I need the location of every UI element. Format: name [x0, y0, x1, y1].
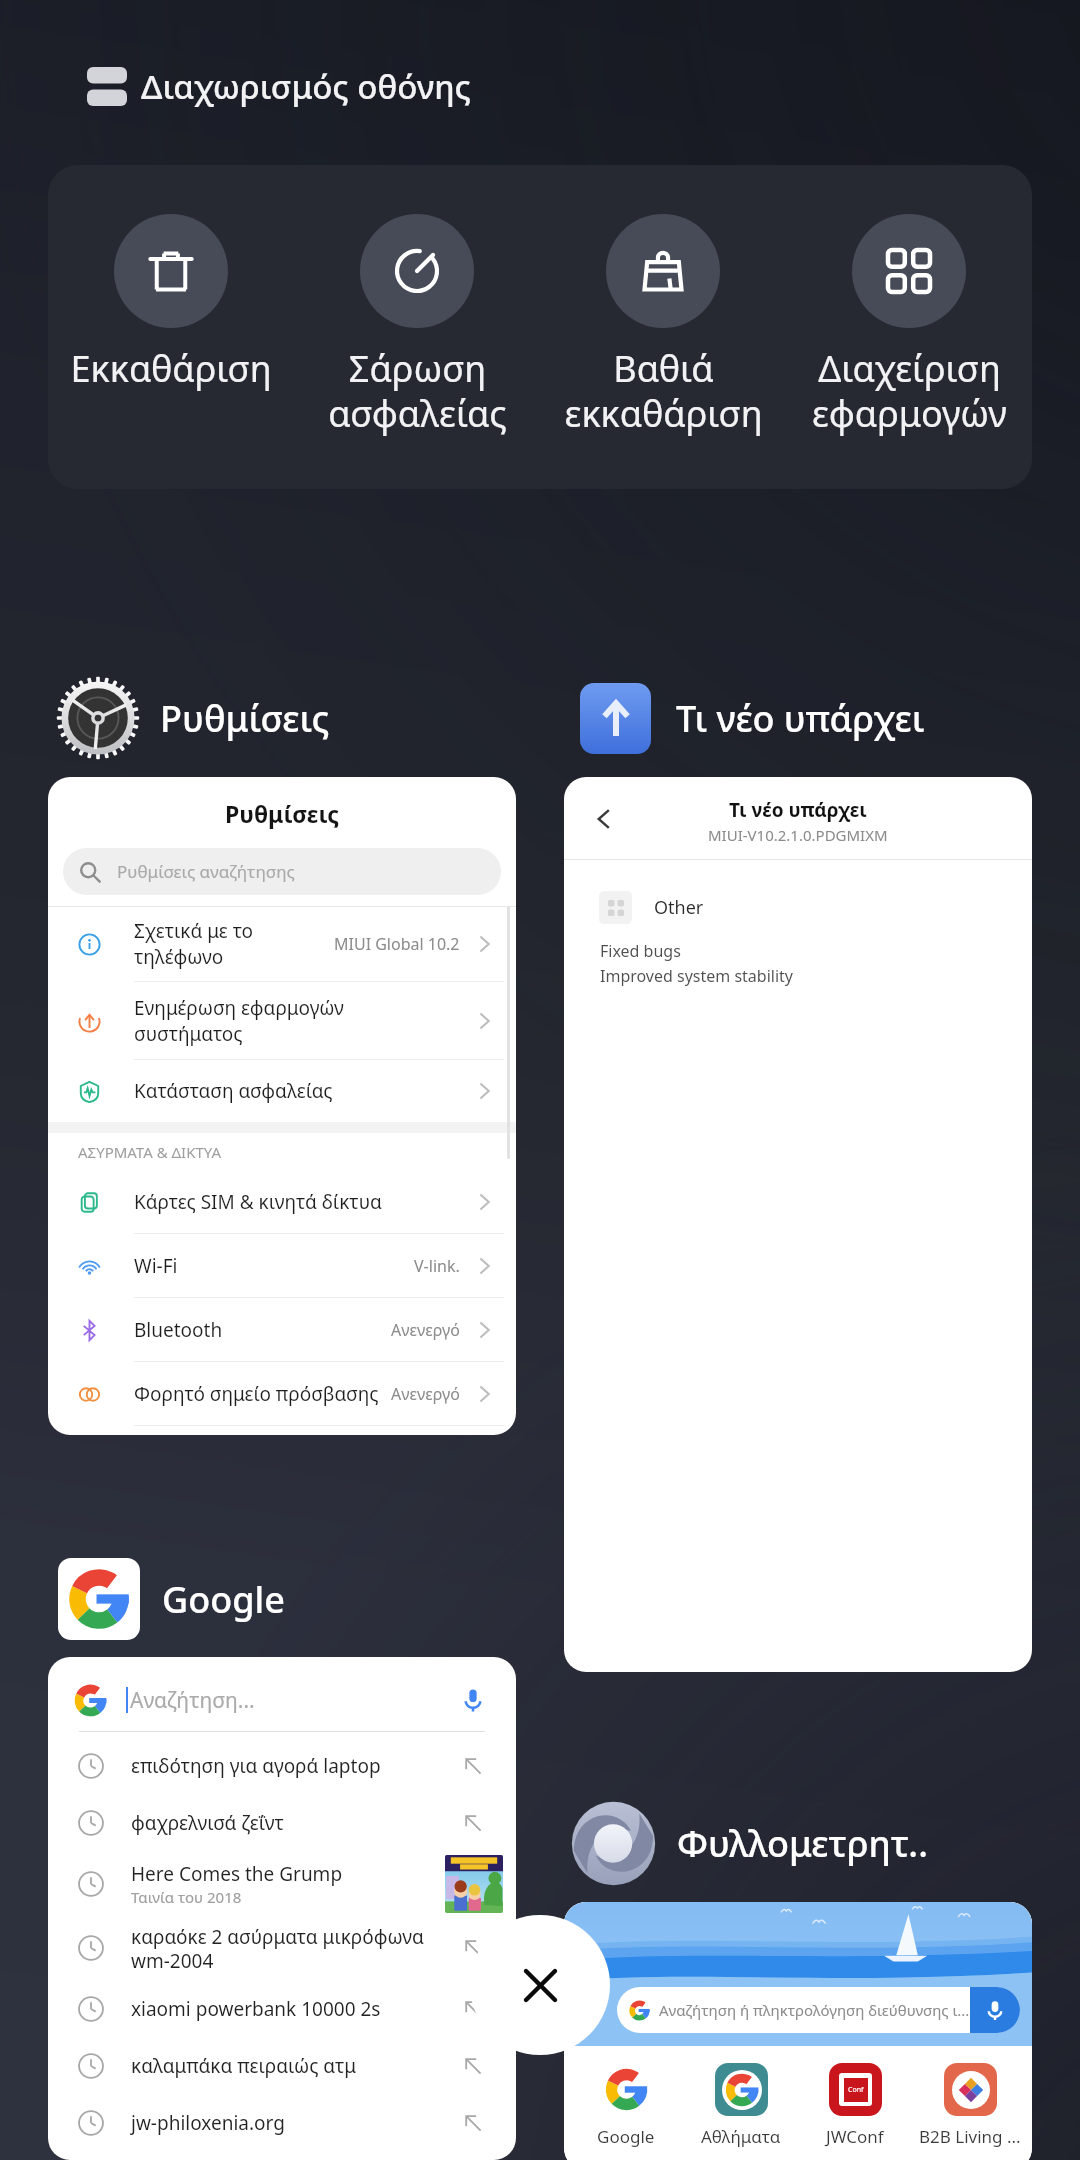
button[interactable]: Διαχωρισμός οθόνης: [83, 60, 475, 113]
button[interactable]: Σάρωση ασφαλείας: [294, 165, 540, 489]
staticText: Σχετικά με το τηλέφωνο: [134, 918, 334, 970]
staticText: Ανενεργό: [391, 1319, 460, 1341]
staticText: Τι νέο υπάρχει: [676, 694, 925, 743]
staticText: Improved system stability: [600, 965, 794, 987]
button[interactable]: Ρυθμίσεις: [48, 777, 516, 1435]
staticText: Βαθιά εκκαθάριση: [564, 344, 763, 438]
button[interactable]: xiaomi powerbank 10000 2s: [48, 1980, 516, 2037]
button[interactable]: Φορητό σημείο πρόσβασης: [48, 1362, 516, 1425]
button[interactable]: Διαχείριση εφαρμογών: [786, 165, 1032, 489]
button[interactable]: Κάρτες SIM & κινητά δίκτυα: [48, 1170, 516, 1233]
button[interactable]: Αναζήτηση...: [48, 1657, 516, 2160]
staticText: Αναζήτηση ή πληκτρολόγηση διεύθυνσης ι..…: [659, 2000, 970, 2020]
button[interactable]: Αθλήματα: [688, 2063, 794, 2148]
button[interactable]: φαχρελνισά ζεΐντ: [48, 1794, 516, 1852]
staticText: Ανενεργό: [391, 1383, 460, 1405]
staticText: Bluetooth: [134, 1317, 391, 1343]
button[interactable]: Εκκαθάριση: [48, 165, 294, 489]
staticText: JWConf: [826, 2125, 884, 2148]
staticText: Αναζήτηση...: [130, 1686, 255, 1715]
staticText: Ρυθμίσεις αναζήτησης: [117, 860, 295, 883]
staticText: Ρυθμίσεις: [160, 694, 330, 743]
button[interactable]: B2B Living ...: [917, 2063, 1023, 2148]
button[interactable]: Τι νέο υπάρχει: [576, 679, 929, 758]
staticText: B2B Living ...: [919, 2125, 1021, 2148]
staticText: Fixed bugs: [600, 940, 681, 962]
button[interactable]: επιδότηση για αγορά laptop: [48, 1738, 516, 1794]
button[interactable]: Wi-Fi: [48, 1234, 516, 1297]
button[interactable]: Βαθιά εκκαθάριση: [540, 165, 786, 489]
staticText: Φορητό σημείο πρόσβασης: [134, 1381, 391, 1407]
staticText: Σάρωση ασφαλείας: [328, 344, 507, 438]
staticText: xiaomi powerbank 10000 2s: [131, 1996, 381, 2022]
staticText: Διαχωρισμός οθόνης: [141, 64, 471, 109]
button[interactable]: Conf: [802, 2063, 908, 2148]
staticText: V-link.: [414, 1255, 460, 1277]
staticText: Ρυθμίσεις: [48, 798, 516, 829]
button[interactable]: καλαμπάκα πειραιώς ατμ: [48, 2037, 516, 2094]
staticText: Ενημέρωση εφαρμογών συστήματος: [134, 995, 474, 1047]
button[interactable]: Google: [573, 2063, 679, 2148]
button[interactable]: Voice search: [970, 1987, 1020, 2033]
staticText: Wi-Fi: [134, 1253, 414, 1279]
staticText: Here Comes the Grump: [131, 1861, 343, 1887]
staticText: Conf: [848, 2085, 864, 2095]
button[interactable]: Αναζήτηση ή πληκτρολόγηση διεύθυνσης ι..…: [564, 1902, 1032, 2160]
staticText: καραόκε 2 ασύρματα μικρόφωνα wm-2004: [131, 1924, 424, 1973]
staticText: επιδότηση για αγορά laptop: [131, 1753, 381, 1779]
button[interactable]: Σχετικά με το τηλέφωνο: [48, 907, 516, 981]
staticText: Ταινία του 2018: [131, 1887, 242, 1907]
staticText: καλαμπάκα πειραιώς ατμ: [131, 2053, 357, 2079]
staticText: Κάρτες SIM & κινητά δίκτυα: [134, 1189, 474, 1215]
staticText: ΑΣΥΡΜΑΤΑ & ΔΙΚΤΥΑ: [78, 1142, 221, 1162]
staticText: jw-philoxenia.org: [131, 2110, 285, 2136]
staticText: Αθλήματα: [701, 2125, 781, 2148]
staticText: Εκκαθάριση: [70, 344, 272, 393]
staticText: Διαχείριση εφαρμογών: [812, 344, 1007, 438]
button[interactable]: καραόκε 2 ασύρματα μικρόφωνα wm-2004: [48, 1916, 516, 1980]
staticText: Google: [162, 1575, 285, 1624]
staticText: Τι νέο υπάρχει: [729, 797, 867, 823]
button[interactable]: [617, 1987, 1020, 2033]
button[interactable]: Here Comes the Grump: [48, 1852, 516, 1916]
staticText: Other: [654, 895, 704, 920]
button[interactable]: Back: [564, 777, 1032, 1672]
staticText: φαχρελνισά ζεΐντ: [131, 1810, 284, 1836]
button[interactable]: Bluetooth: [48, 1298, 516, 1361]
staticText: MIUI Global 10.2: [334, 933, 460, 955]
staticText: Google: [597, 2125, 655, 2148]
staticText: MIUI-V10.2.1.0.PDGMIXM: [708, 825, 888, 845]
button[interactable]: Back: [584, 799, 624, 839]
button[interactable]: jw-philoxenia.org: [48, 2094, 516, 2152]
button[interactable]: Ρυθμίσεις: [52, 672, 334, 764]
button[interactable]: Ενημέρωση εφαρμογών συστήματος: [48, 982, 516, 1059]
button[interactable]: Κατάσταση ασφαλείας: [48, 1060, 516, 1122]
button[interactable]: Close all: [470, 1915, 610, 2055]
button[interactable]: Φυλλομετρητ..: [567, 1797, 932, 1890]
button[interactable]: Ρυθμίσεις αναζήτησης: [63, 848, 501, 895]
button[interactable]: Google: [54, 1554, 289, 1644]
staticText: Φυλλομετρητ..: [677, 1819, 928, 1868]
staticText: Κατάσταση ασφαλείας: [134, 1078, 474, 1104]
